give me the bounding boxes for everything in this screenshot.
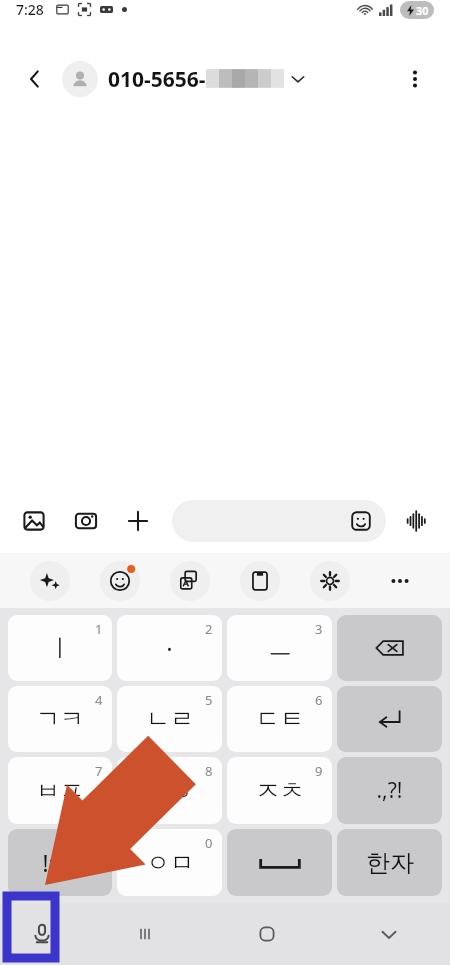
button[interactable]: More options bbox=[394, 58, 436, 100]
staticText: 한자 bbox=[366, 848, 414, 878]
button[interactable]: Emoji bbox=[100, 561, 140, 601]
button[interactable]: ㅅㅎ bbox=[117, 757, 222, 824]
staticText: ㄴㄹ bbox=[146, 704, 194, 734]
button[interactable]: ㅈㅊ bbox=[227, 757, 332, 824]
button[interactable]: Enter bbox=[337, 686, 442, 752]
button[interactable]: ㄷㅌ bbox=[227, 686, 332, 752]
staticText: ㅇㅁ bbox=[146, 848, 194, 878]
button[interactable]: ㅣ bbox=[8, 615, 112, 681]
button[interactable]: !#1 bbox=[8, 829, 112, 896]
button[interactable]: Space bbox=[227, 829, 332, 896]
button[interactable]: Camera bbox=[66, 501, 106, 541]
staticText: ㅂㅍ bbox=[36, 776, 84, 806]
staticText: 1 bbox=[95, 620, 103, 638]
staticText: 9 bbox=[315, 762, 323, 780]
staticText: 010-5656- bbox=[108, 65, 206, 94]
button[interactable]: Clipboard bbox=[240, 561, 280, 601]
button[interactable]: AI assist bbox=[30, 561, 70, 601]
button[interactable]: .,?! bbox=[337, 757, 442, 824]
button[interactable]: ㅂㅍ bbox=[8, 757, 112, 824]
button[interactable]: Backspace bbox=[337, 615, 442, 681]
button[interactable]: ㅡ bbox=[227, 615, 332, 681]
staticText: 2 bbox=[205, 620, 213, 638]
button[interactable]: 010-5656- bbox=[62, 61, 394, 97]
staticText: 6 bbox=[315, 691, 323, 709]
button[interactable]: Add bbox=[118, 501, 158, 541]
button[interactable]: ㅇㅁ bbox=[117, 829, 222, 896]
button[interactable]: Voice message bbox=[396, 501, 436, 541]
staticText: 7:28 bbox=[16, 0, 44, 19]
staticText: 30 bbox=[416, 3, 429, 18]
staticText: ㄱㅋ bbox=[36, 704, 84, 734]
button[interactable]: Recents bbox=[84, 903, 206, 965]
button[interactable]: Voice input bbox=[0, 903, 84, 965]
button[interactable]: · bbox=[117, 615, 222, 681]
staticText: 8 bbox=[205, 762, 213, 780]
staticText: 7 bbox=[95, 762, 103, 780]
button[interactable]: Translate bbox=[170, 561, 210, 601]
staticText: 4 bbox=[95, 691, 103, 709]
staticText: · bbox=[166, 632, 173, 665]
staticText: .,?! bbox=[376, 776, 403, 805]
staticText: ㅅㅎ bbox=[146, 776, 194, 806]
staticText: 0 bbox=[205, 834, 213, 852]
button[interactable]: Stickers bbox=[348, 508, 374, 534]
staticText: ㄷㅌ bbox=[256, 704, 304, 734]
staticText: 5 bbox=[205, 691, 213, 709]
button[interactable]: Hide keyboard bbox=[328, 903, 450, 965]
button[interactable]: More bbox=[380, 561, 420, 601]
button[interactable]: Settings bbox=[310, 561, 350, 601]
staticText: 3 bbox=[315, 620, 323, 638]
button[interactable]: ㄱㅋ bbox=[8, 686, 112, 752]
button[interactable]: Back bbox=[14, 58, 56, 100]
staticText: !#1 bbox=[42, 846, 78, 879]
staticText: ㅈㅊ bbox=[256, 776, 304, 806]
staticText: ㅣ bbox=[48, 633, 72, 663]
button[interactable]: Home bbox=[206, 903, 328, 965]
staticText: ㅡ bbox=[268, 633, 292, 663]
button[interactable]: 한자 bbox=[337, 829, 442, 896]
button[interactable]: ㄴㄹ bbox=[117, 686, 222, 752]
button[interactable]: Stickers bbox=[172, 500, 386, 542]
button[interactable]: Gallery bbox=[14, 501, 54, 541]
